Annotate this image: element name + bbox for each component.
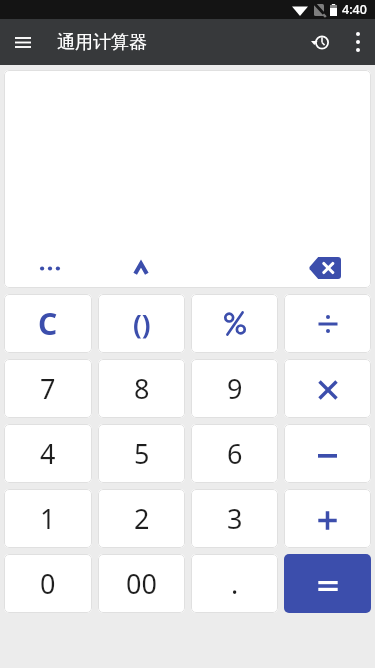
button[interactable] [279,248,371,288]
staticText: 7 [40,370,56,407]
staticText: 1 [40,500,56,537]
button[interactable]: 3 [191,489,278,548]
button[interactable]: () [98,294,185,353]
button[interactable] [284,489,371,548]
button[interactable] [299,19,341,65]
button[interactable] [284,294,371,353]
button[interactable]: 00 [98,554,185,613]
button[interactable] [0,19,46,65]
staticText: 通用计算器 [57,31,147,54]
button[interactable] [284,424,371,483]
staticText: 8 [134,370,150,407]
button[interactable]: 5 [98,424,185,483]
staticText: 6 [227,435,243,472]
staticText: 3 [227,500,243,537]
staticText: () [133,306,151,341]
button[interactable] [95,248,187,288]
button[interactable]: 1 [4,489,92,548]
button[interactable]: 2 [98,489,185,548]
button[interactable] [284,359,371,418]
staticText: 4 [40,435,56,472]
button[interactable]: 7 [4,359,92,418]
staticText: 9 [227,370,243,407]
button[interactable] [4,248,95,288]
button[interactable]: 6 [191,424,278,483]
button[interactable]: . [191,554,278,613]
staticText: 2 [134,500,150,537]
button[interactable] [341,19,375,65]
button[interactable]: 0 [4,554,92,613]
button[interactable]: 9 [191,359,278,418]
button[interactable]: C [4,294,92,353]
staticText: 4:40 [342,1,367,18]
staticText: 0 [40,565,56,602]
button[interactable]: 4 [4,424,92,483]
staticText: 5 [134,435,150,472]
button[interactable]: 8 [98,359,185,418]
button[interactable] [284,554,371,613]
staticText: . [231,565,239,602]
staticText: C [38,303,58,344]
staticText: 00 [126,565,157,602]
button[interactable] [191,294,278,353]
